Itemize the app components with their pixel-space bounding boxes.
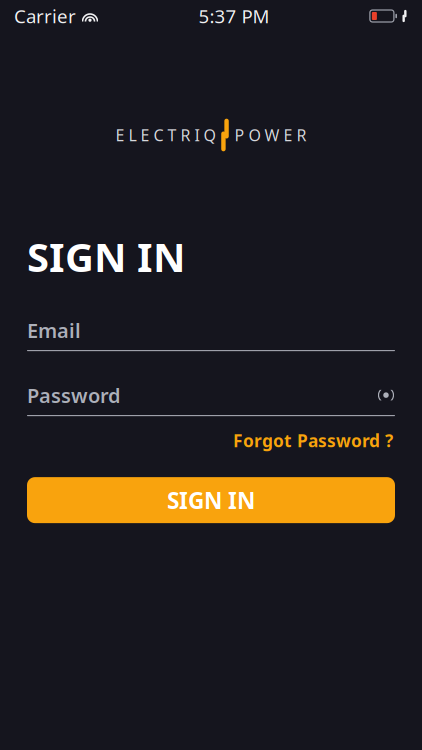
staticText: Email — [27, 317, 81, 343]
staticText: SIGN IN — [167, 485, 255, 515]
button[interactable]: SIGN IN — [27, 477, 395, 523]
button[interactable]: Show password — [369, 386, 395, 404]
staticText: 5:37 PM — [198, 4, 269, 28]
staticText: P O W E R — [234, 124, 306, 146]
button[interactable]: Forgot Password ? — [233, 425, 393, 456]
staticText: Forgot Password ? — [233, 429, 393, 452]
staticText: Carrier — [14, 4, 76, 28]
staticText: SIGN IN — [27, 230, 186, 283]
staticText: E L E C T R I Q — [115, 124, 215, 146]
staticText: Password — [27, 382, 121, 408]
